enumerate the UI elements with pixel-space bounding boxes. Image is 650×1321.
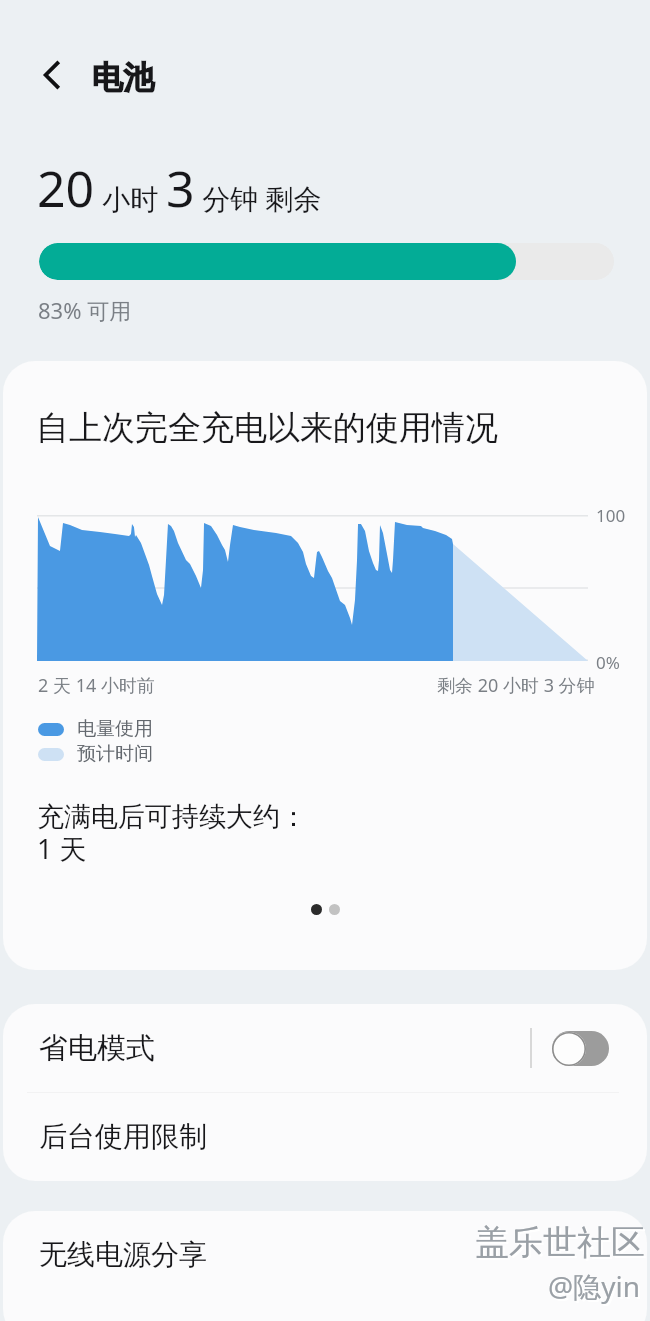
staticText: @隐yin <box>548 1267 640 1305</box>
staticText: 3 <box>166 154 195 222</box>
staticText: 预计时间 <box>77 742 153 766</box>
staticText: 后台使用限制 <box>39 1119 207 1154</box>
button[interactable]: 无线电源分享 <box>3 1211 647 1298</box>
staticText: 83% 可用 <box>38 295 132 325</box>
staticText: 100 <box>596 504 626 527</box>
staticText: 1 天 <box>37 830 87 867</box>
staticText: 电量使用 <box>77 717 153 741</box>
staticText: 省电模式 <box>39 1030 155 1067</box>
staticText: 小时 <box>95 179 166 217</box>
staticText: 剩余 20 小时 3 分钟 <box>437 673 595 698</box>
staticText: @隐yin <box>550 1269 642 1307</box>
staticText: 分钟 剩余 <box>195 179 322 217</box>
staticText: 盖乐世社区 <box>475 1221 645 1264</box>
staticText: 充满电后可持续大约： <box>37 800 307 834</box>
staticText: 自上次完全充电以来的使用情况 <box>36 407 498 449</box>
button[interactable]: 后台使用限制 <box>3 1093 647 1180</box>
staticText: 0% <box>596 651 620 674</box>
button[interactable]: 省电模式 <box>3 1004 647 1092</box>
staticText: 20 <box>37 154 95 222</box>
button[interactable]: Back <box>30 52 76 98</box>
button[interactable]: Power saving mode toggle <box>552 1031 609 1066</box>
staticText: 2 天 14 小时前 <box>38 673 155 698</box>
button[interactable]: 自上次完全充电以来的使用情况 <box>3 361 647 970</box>
staticText: 盖乐世社区 <box>477 1223 647 1266</box>
staticText: 电池 <box>92 58 154 97</box>
staticText: 无线电源分享 <box>39 1237 207 1272</box>
